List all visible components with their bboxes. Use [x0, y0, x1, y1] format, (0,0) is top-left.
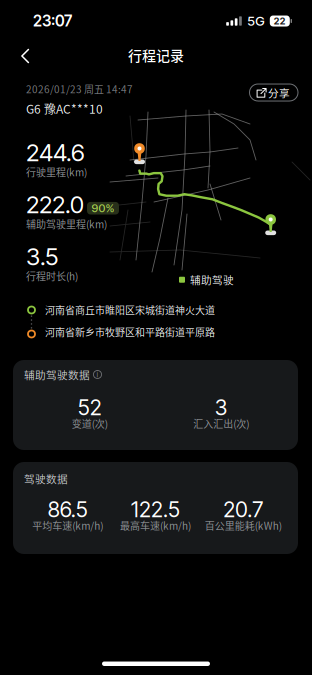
staticText: G6 豫AC***10 [26, 100, 103, 117]
staticText: 行驶里程(km) [26, 165, 87, 179]
staticText: 3.5 [26, 242, 58, 271]
staticText: i [96, 369, 98, 379]
staticText: 86.5 [48, 497, 88, 522]
staticText: 驾驶数据 [24, 471, 68, 486]
staticText: 3 [215, 395, 228, 420]
staticText: 辅助驾驶 [190, 272, 234, 287]
staticText: 分享 [268, 85, 290, 100]
staticText: 河南省新乡市牧野区和平路街道平原路 [45, 325, 215, 339]
staticText: 22 [274, 15, 286, 27]
staticText: 行程时长(h) [26, 269, 78, 283]
staticText: 20.7 [223, 497, 263, 522]
button[interactable]: 分享 [249, 84, 298, 101]
staticText: 行程记录 [128, 45, 184, 65]
staticText: 河南省商丘市睢阳区宋城街道神火大道 [45, 303, 215, 317]
staticText: 辅助驾驶数据 [24, 367, 90, 382]
staticText: 122.5 [131, 497, 180, 522]
staticText: 百公里能耗(kWh) [205, 518, 282, 533]
staticText: 52 [78, 395, 102, 420]
staticText: 244.6 [26, 138, 85, 167]
staticText: 222.0 [26, 190, 84, 219]
staticText: 2026/01/23 周五 14:47 [26, 82, 133, 96]
staticText: 平均车速(km/h) [32, 518, 103, 533]
staticText: 23:07 [33, 12, 72, 30]
staticText: 最高车速(km/h) [120, 518, 191, 533]
button[interactable]: Back [0, 43, 43, 71]
staticText: 90% [91, 201, 114, 215]
staticText: 5G [247, 13, 264, 29]
staticText: 变道(次) [72, 416, 108, 431]
staticText: 辅助驾驶里程(km) [26, 217, 107, 231]
staticText: 汇入汇出(次) [193, 416, 249, 431]
